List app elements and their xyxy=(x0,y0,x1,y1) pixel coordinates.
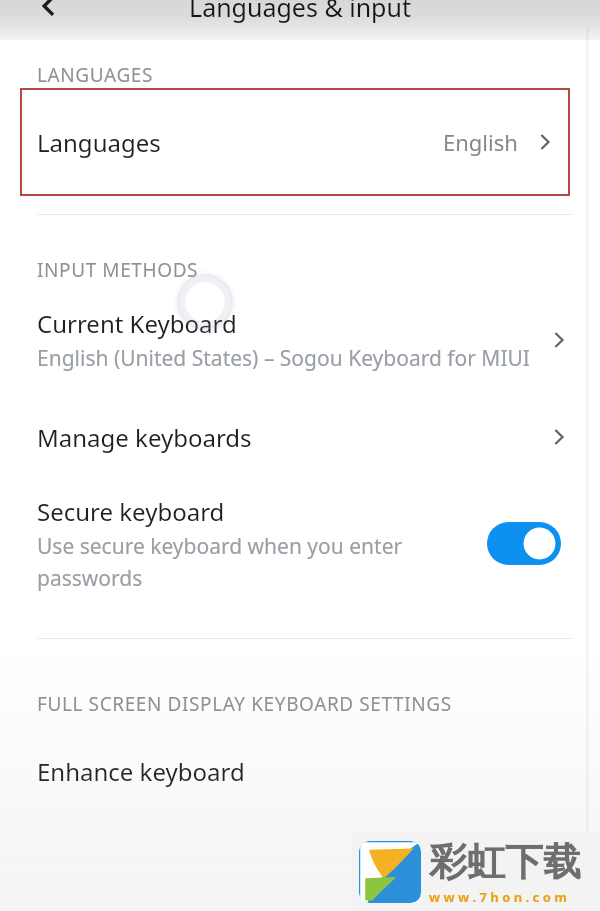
staticText: Enhance keyboard xyxy=(37,755,245,788)
staticText: Current Keyboard xyxy=(37,307,237,340)
button[interactable]: Current Keyboard xyxy=(0,307,600,373)
staticText: Languages & input xyxy=(189,0,411,24)
staticText: Secure keyboard xyxy=(37,495,225,528)
button[interactable]: Secure keyboard xyxy=(0,495,600,592)
staticText: Use secure keyboard when you enter passw… xyxy=(37,532,479,592)
staticText: Manage keyboards xyxy=(37,421,548,454)
staticText: Languages xyxy=(37,126,161,159)
staticText: LANGUAGES xyxy=(37,62,154,88)
staticText: w w w . 7 h o n . c o m xyxy=(429,888,567,906)
button[interactable]: Secure keyboard toggle xyxy=(487,522,561,565)
staticText: FULL SCREEN DISPLAY KEYBOARD SETTINGS xyxy=(37,691,452,717)
button[interactable]: Back xyxy=(24,0,72,26)
staticText: 彩虹下载 xyxy=(429,838,581,886)
button[interactable]: Enhance keyboard xyxy=(0,745,600,797)
staticText: English xyxy=(443,127,518,157)
staticText: English (United States) – Sogou Keyboard… xyxy=(37,344,530,373)
button[interactable]: Languages xyxy=(20,88,570,196)
button[interactable]: Manage keyboards xyxy=(0,409,600,465)
staticText: INPUT METHODS xyxy=(37,257,199,283)
